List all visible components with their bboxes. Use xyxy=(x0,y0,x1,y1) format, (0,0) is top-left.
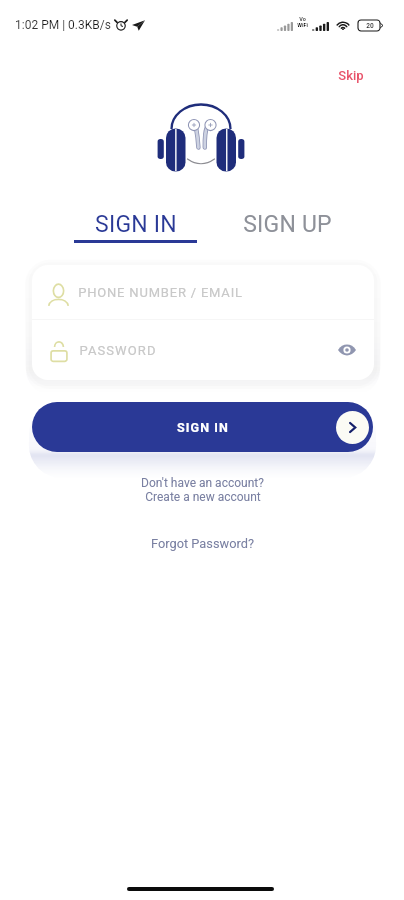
button[interactable]: Show password xyxy=(334,337,360,363)
button[interactable]: Skip xyxy=(326,62,376,89)
staticText: 1:02 PM | 0.3KB/s xyxy=(15,18,111,32)
button[interactable]: PHONE NUMBER / EMAIL xyxy=(32,265,374,319)
button[interactable]: SIGN IN xyxy=(74,211,197,243)
button[interactable]: Don't have an account? xyxy=(119,471,286,509)
button[interactable]: Forgot Password? xyxy=(129,531,276,556)
staticText: SIGN IN xyxy=(177,420,229,435)
staticText: Forgot Password? xyxy=(151,536,254,551)
staticText: PHONE NUMBER / EMAIL xyxy=(78,285,243,300)
staticText: 20 xyxy=(366,22,374,30)
staticText: PASSWORD xyxy=(79,343,157,358)
button[interactable]: SIGN IN xyxy=(32,402,373,452)
staticText: Skip xyxy=(338,68,364,83)
staticText: SIGN UP xyxy=(243,211,332,238)
staticText: Vo xyxy=(299,16,306,22)
staticText: SIGN IN xyxy=(95,211,177,238)
staticText: Don't have an account? xyxy=(141,476,264,490)
button[interactable]: PASSWORD xyxy=(32,320,374,380)
button[interactable]: SIGN UP xyxy=(237,211,338,238)
staticText: Create a new account xyxy=(145,490,261,504)
staticText: WiFi xyxy=(297,22,308,28)
